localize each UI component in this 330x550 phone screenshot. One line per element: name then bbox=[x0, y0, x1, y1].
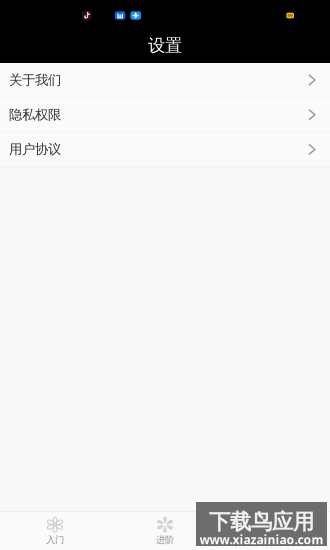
staticText: www.xiazainiao.com bbox=[199, 531, 323, 547]
staticText: 进阶 bbox=[156, 534, 174, 546]
button[interactable]: 用户协议 bbox=[0, 132, 330, 167]
staticText: 入门 bbox=[46, 534, 64, 546]
staticText: 高级 bbox=[266, 534, 284, 546]
staticText: 设置 bbox=[148, 35, 182, 56]
staticText: 下载鸟应用 bbox=[209, 509, 314, 535]
button[interactable]: 高级 bbox=[220, 509, 330, 550]
button[interactable]: 进阶 bbox=[110, 509, 220, 550]
button[interactable]: 隐私权限 bbox=[0, 98, 330, 132]
button[interactable]: 入门 bbox=[0, 509, 110, 550]
button[interactable]: 关于我们 bbox=[0, 63, 330, 98]
staticText: 用户协议 bbox=[9, 141, 61, 158]
staticText: 隐私权限 bbox=[9, 106, 61, 123]
staticText: 关于我们 bbox=[9, 72, 61, 88]
